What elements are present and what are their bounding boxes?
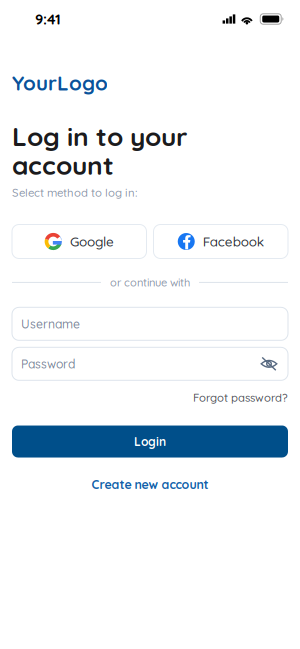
staticText: Forgot password? <box>193 390 288 404</box>
staticText: account <box>12 148 114 181</box>
staticText: Google <box>70 233 114 250</box>
staticText: 9:41 <box>35 10 61 28</box>
staticText: YourLogo <box>12 70 108 96</box>
staticText: Create new account <box>91 476 208 492</box>
staticText: Log in to your <box>12 120 187 152</box>
button[interactable]: Login <box>12 425 288 457</box>
button[interactable]: Create new account <box>91 476 208 492</box>
button[interactable]: Facebook <box>153 224 288 258</box>
staticText: Password <box>21 356 75 371</box>
staticText: Username <box>21 316 80 331</box>
button[interactable]: Forgot password? <box>193 390 288 404</box>
staticText: Facebook <box>203 233 264 250</box>
staticText: Login <box>134 434 166 449</box>
staticText: or continue with <box>110 275 190 289</box>
button[interactable]: Google <box>12 224 146 258</box>
staticText: Select method to log in: <box>12 185 137 199</box>
